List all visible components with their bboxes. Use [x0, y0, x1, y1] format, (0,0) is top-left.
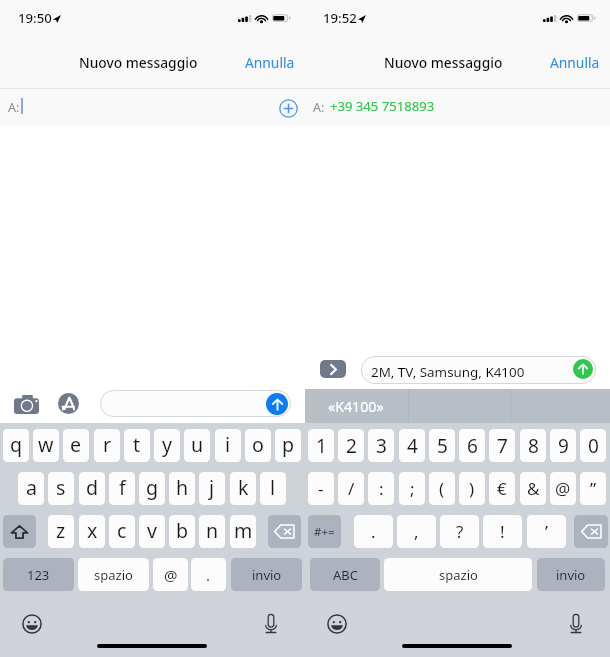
button[interactable]: y [154, 429, 180, 462]
button[interactable]: i [215, 429, 241, 462]
button[interactable]: s [48, 472, 74, 505]
button[interactable]: ? [440, 515, 479, 548]
button[interactable]: Cancella [574, 515, 608, 548]
button[interactable]: ( [429, 472, 455, 505]
button[interactable]: z [48, 515, 74, 548]
button[interactable]: Annulla [239, 47, 301, 78]
button[interactable]: 4 [399, 429, 425, 462]
button[interactable]: & [520, 472, 546, 505]
button[interactable]: Aggiungi contatto [275, 95, 301, 121]
button[interactable] [361, 356, 596, 384]
button[interactable]: 6 [459, 429, 485, 462]
button[interactable]: ) [459, 472, 485, 505]
button[interactable]: ’ [527, 515, 566, 548]
button[interactable]: ABC [310, 558, 380, 591]
button[interactable]: Invia [266, 393, 288, 415]
button[interactable]: #+= [308, 515, 341, 548]
button[interactable]: @ [153, 558, 188, 591]
button[interactable]: c [109, 515, 135, 548]
button[interactable]: : [368, 472, 394, 505]
button[interactable]: 2 [338, 429, 364, 462]
button[interactable]: invio [537, 558, 605, 591]
button[interactable]: h [169, 472, 195, 505]
button[interactable]: 1 [308, 429, 334, 462]
staticText: «K4100» [328, 397, 384, 416]
button[interactable]: Annulla [544, 47, 606, 78]
button[interactable]: Cancella [268, 515, 301, 548]
button[interactable]: / [338, 472, 364, 505]
button[interactable]: +39 345 7518893 [330, 97, 435, 115]
button[interactable]: invio [231, 558, 302, 591]
button[interactable]: e [63, 429, 89, 462]
button[interactable]: 9 [550, 429, 576, 462]
staticText: ” [590, 477, 597, 500]
button[interactable]: q [3, 429, 29, 462]
button[interactable]: a [18, 472, 44, 505]
button[interactable]: Emoji [324, 611, 350, 637]
staticText: 8 [528, 433, 539, 459]
staticText: k [238, 474, 249, 501]
staticText: m [234, 517, 253, 544]
button[interactable]: 123 [3, 558, 74, 591]
button[interactable]: App Store [57, 392, 80, 415]
button[interactable]: n [199, 515, 225, 548]
button[interactable]: 3 [368, 429, 394, 462]
staticText: r [103, 431, 112, 458]
button[interactable]: 8 [520, 429, 546, 462]
button[interactable]: Espandi [320, 360, 346, 378]
staticText: q [10, 431, 23, 458]
button[interactable]: f [109, 472, 135, 505]
button[interactable]: Maiuscole [3, 515, 36, 548]
button[interactable]: p [275, 429, 301, 462]
button[interactable]: v [139, 515, 165, 548]
staticText: g [146, 474, 159, 501]
button[interactable]: x [79, 515, 105, 548]
staticText: ) [469, 477, 475, 500]
button[interactable]: - [308, 472, 334, 505]
button[interactable]: € [489, 472, 515, 505]
button[interactable]: «K4100» [328, 397, 384, 416]
button[interactable]: Invia [573, 359, 593, 379]
button[interactable]: Dettatura [258, 608, 284, 638]
button[interactable]: , [397, 515, 436, 548]
staticText: . [371, 520, 376, 543]
button[interactable]: w [33, 429, 59, 462]
button[interactable]: spazio [384, 558, 532, 591]
button[interactable]: @ [550, 472, 576, 505]
button[interactable]: j [199, 472, 225, 505]
button[interactable]: g [139, 472, 165, 505]
button[interactable]: Emoji [19, 611, 45, 637]
button[interactable]: Nuovo messaggio [384, 53, 503, 72]
button[interactable]: k [230, 472, 256, 505]
staticText: f [119, 474, 126, 501]
staticText: 19:52 [323, 9, 357, 27]
button[interactable] [100, 390, 291, 417]
button[interactable]: Dettatura [563, 608, 589, 638]
button[interactable]: Nuovo messaggio [79, 53, 198, 72]
button[interactable]: b [169, 515, 195, 548]
button[interactable]: . [191, 558, 226, 591]
button[interactable]: 7 [489, 429, 515, 462]
button[interactable]: m [230, 515, 256, 548]
button[interactable]: r [94, 429, 120, 462]
staticText: 1 [316, 433, 327, 459]
button[interactable]: 0 [580, 429, 606, 462]
button[interactable]: t [124, 429, 150, 462]
staticText: / [348, 477, 355, 500]
button[interactable]: Fotocamera [10, 390, 43, 418]
button[interactable]: l [260, 472, 286, 505]
button[interactable]: ; [399, 472, 425, 505]
button[interactable]: ” [580, 472, 606, 505]
button[interactable]: u [184, 429, 210, 462]
button[interactable]: . [354, 515, 393, 548]
staticText: o [252, 431, 264, 458]
button[interactable]: 5 [429, 429, 455, 462]
staticText: @ [555, 477, 571, 500]
staticText: y [162, 431, 172, 458]
button[interactable]: spazio [78, 558, 149, 591]
button[interactable]: d [79, 472, 105, 505]
staticText: w [38, 431, 54, 458]
staticText: j [209, 474, 215, 501]
button[interactable]: ! [483, 515, 522, 548]
button[interactable]: o [245, 429, 271, 462]
